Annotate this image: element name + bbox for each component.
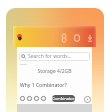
staticText: Search for words...: [28, 53, 72, 60]
button[interactable]: Download: [85, 32, 95, 43]
button[interactable]: Phone: [72, 32, 82, 43]
button[interactable]: Help: [83, 95, 91, 103]
button[interactable]: Search for words...: [19, 52, 90, 61]
button[interactable]: Bookmark: [59, 32, 69, 43]
button[interactable]: Chat: [26, 94, 33, 103]
button[interactable]: Bookmark: [19, 94, 26, 103]
button[interactable]: Site logo: [15, 32, 23, 43]
staticText: Why 1 Combinator?: [20, 82, 67, 89]
button[interactable]: Search: [40, 94, 47, 103]
staticText: Storage 4/2GB: [17, 68, 92, 75]
button[interactable]: Combinator: [52, 95, 75, 102]
button[interactable]: Notify: [33, 94, 40, 103]
staticText: Combinator: [52, 96, 75, 101]
